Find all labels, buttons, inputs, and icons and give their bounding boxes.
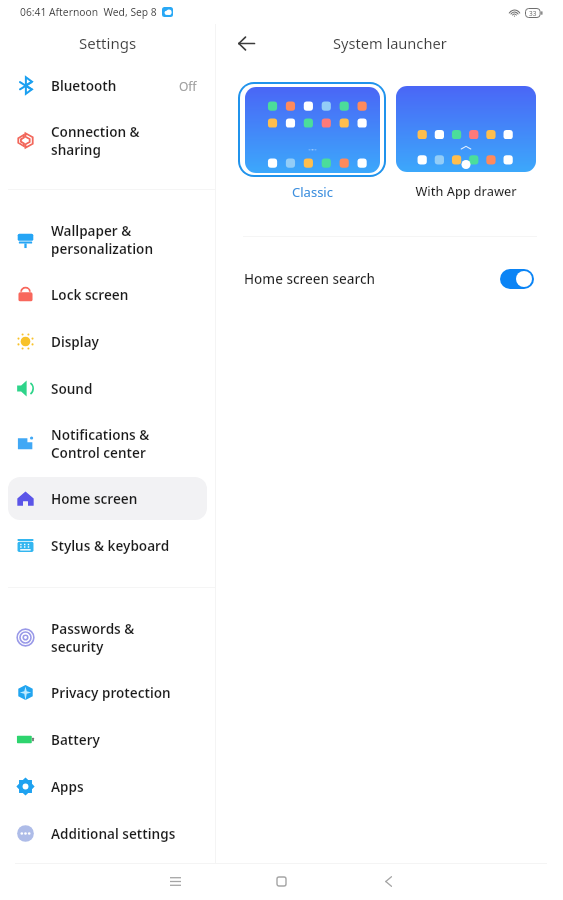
button[interactable]: Wallpaper & personalization <box>8 208 207 271</box>
button[interactable]: Apps <box>8 763 207 810</box>
staticText: Sound <box>51 380 197 398</box>
button[interactable]: Connection & sharing <box>8 109 207 172</box>
button[interactable]: Back <box>233 30 259 56</box>
staticText: Connection & sharing <box>51 123 197 159</box>
staticText: Classic <box>292 183 333 201</box>
button[interactable]: Back <box>370 863 407 900</box>
staticText: 06:41 Afternoon Wed, Sep 8 <box>20 5 157 19</box>
staticText: Apps <box>51 778 197 796</box>
button[interactable]: Home <box>263 863 300 900</box>
button[interactable]: Home screen search <box>216 237 563 321</box>
staticText: 33 <box>529 9 537 18</box>
button[interactable]: Privacy protection <box>8 669 207 716</box>
button[interactable]: Passwords & security <box>8 606 207 669</box>
staticText: Battery <box>51 731 197 749</box>
staticText: Notifications & Control center <box>51 426 197 462</box>
staticText: Off <box>179 78 197 94</box>
staticText: Privacy protection <box>51 684 197 702</box>
button[interactable]: Lock screen <box>8 271 207 318</box>
button[interactable]: Notifications & Control center <box>8 412 207 475</box>
button[interactable]: Bluetooth <box>8 62 207 109</box>
staticText: Additional settings <box>51 825 197 843</box>
button[interactable]: Display <box>8 318 207 365</box>
staticText: With App drawer <box>415 183 517 200</box>
button[interactable]: Recents <box>157 863 194 900</box>
button[interactable] <box>396 86 536 172</box>
button[interactable]: Sound <box>8 365 207 412</box>
staticText: System launcher <box>333 33 447 53</box>
button[interactable]: Stylus & keyboard <box>8 522 207 569</box>
button[interactable]: Battery <box>8 716 207 763</box>
staticText: Home screen search <box>244 270 500 288</box>
staticText: Display <box>51 333 197 351</box>
staticText: Stylus & keyboard <box>51 537 197 555</box>
staticText: Wallpaper & personalization <box>51 222 197 258</box>
staticText: Passwords & security <box>51 620 197 656</box>
staticText: Bluetooth <box>51 77 179 95</box>
button[interactable]: Additional settings <box>8 810 207 857</box>
staticText: Home screen <box>51 490 197 508</box>
button[interactable]: Home screen search toggle <box>500 269 534 289</box>
button[interactable]: Home screen <box>8 477 207 520</box>
staticText: Settings <box>79 33 137 53</box>
staticText: Lock screen <box>51 286 197 304</box>
button[interactable] <box>238 82 386 177</box>
